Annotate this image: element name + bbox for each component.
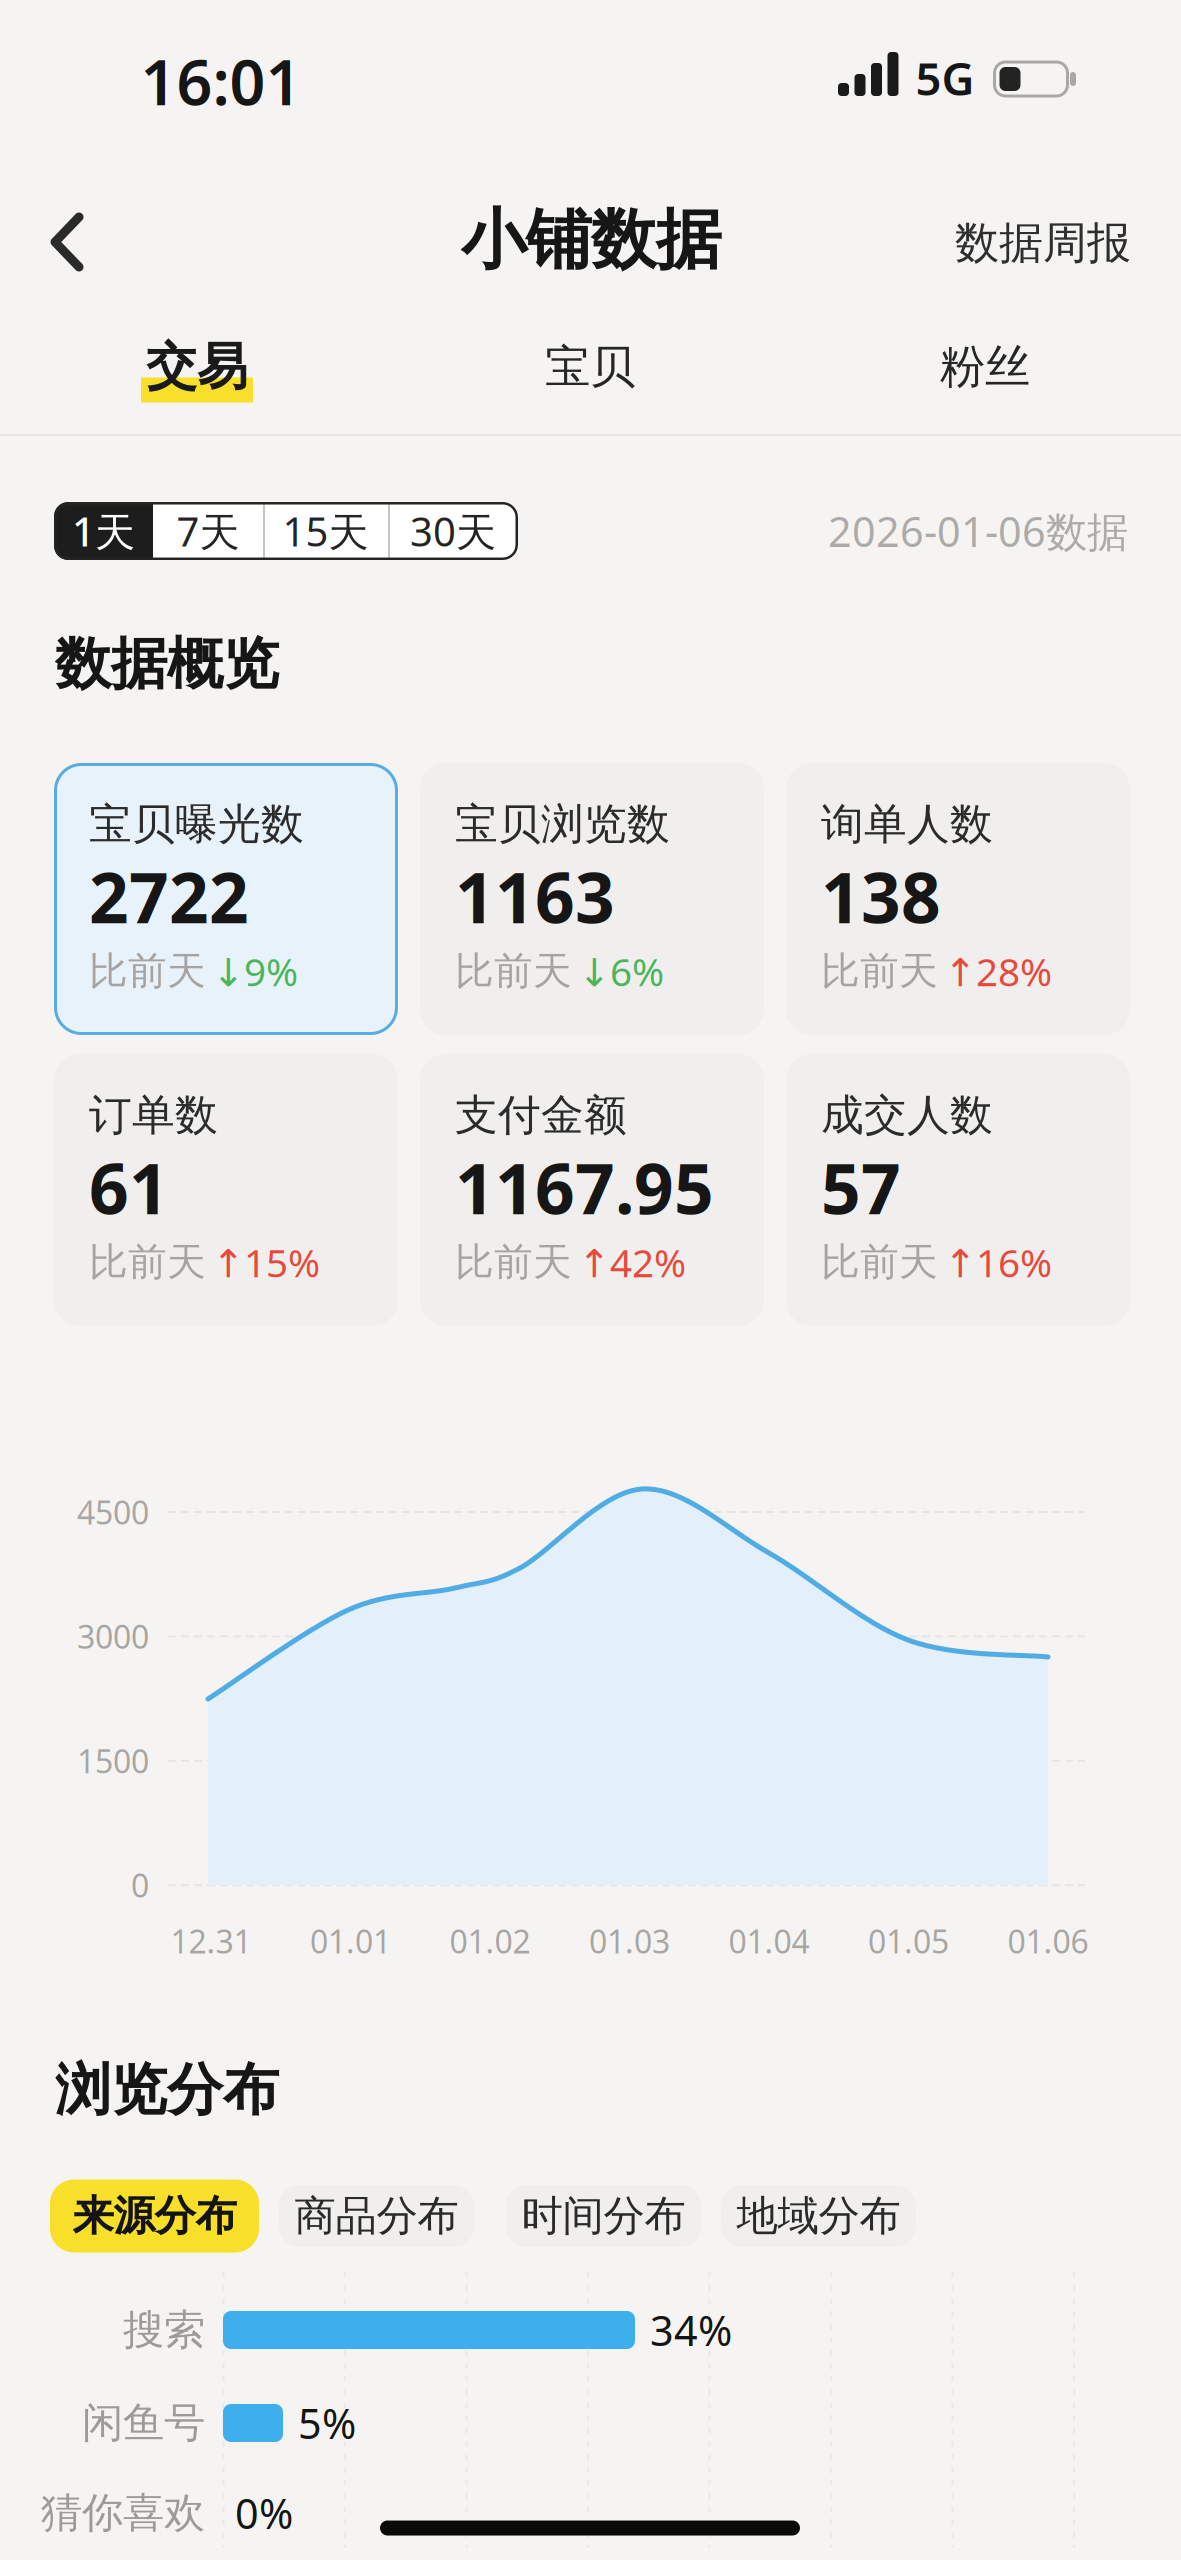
staticText: 搜索 (123, 2305, 205, 2355)
staticText: 15天 (282, 504, 368, 557)
staticText: 1163 (455, 850, 615, 942)
button[interactable]: 商品分布 (279, 2185, 474, 2247)
staticText: ↑42% (578, 1236, 686, 1288)
staticText: 成交人数 (821, 1089, 993, 1141)
staticText: 来源分布 (72, 2191, 236, 2241)
staticText: 7天 (176, 504, 239, 557)
staticText: 61 (89, 1141, 169, 1233)
button[interactable]: 7天 (153, 502, 263, 560)
staticText: 宝贝 (545, 339, 635, 395)
staticText: 数据概览 (55, 630, 279, 698)
staticText: 01.05 (868, 1920, 949, 1962)
staticText: 1500 (77, 1740, 149, 1782)
staticText: 5G (915, 48, 974, 108)
staticText: 小铺数据 (461, 200, 721, 280)
staticText: 地域分布 (736, 2191, 900, 2241)
staticText: 比前天 (89, 1238, 206, 1286)
staticText: 01.03 (589, 1920, 670, 1962)
button[interactable]: 1天 (54, 502, 153, 560)
button[interactable]: Back (51, 213, 83, 271)
button[interactable]: 询单人数 (786, 763, 1130, 1035)
staticText: 比前天 (821, 947, 938, 995)
staticText: ↓6% (578, 945, 664, 997)
staticText: 商品分布 (294, 2191, 458, 2241)
staticText: 4500 (77, 1491, 149, 1533)
button[interactable]: 30天 (388, 502, 518, 560)
staticText: 询单人数 (821, 798, 993, 850)
staticText: 时间分布 (521, 2191, 685, 2241)
button[interactable]: 地域分布 (721, 2185, 916, 2247)
staticText: 5% (298, 2396, 356, 2450)
staticText: 0% (235, 2486, 293, 2540)
staticText: 比前天 (455, 947, 572, 995)
button[interactable]: 15天 (263, 502, 388, 560)
staticText: 浏览分布 (55, 2056, 279, 2124)
button[interactable]: 成交人数 (786, 1054, 1130, 1326)
button[interactable]: 粉丝 (940, 339, 1030, 395)
staticText: 支付金额 (455, 1089, 627, 1141)
staticText: 01.02 (449, 1920, 530, 1962)
staticText: 2722 (89, 850, 249, 942)
button[interactable]: 宝贝 (545, 339, 635, 395)
staticText: 数据周报 (955, 216, 1131, 270)
staticText: 34% (650, 2303, 732, 2357)
button[interactable]: 时间分布 (506, 2185, 701, 2247)
staticText: ↑15% (212, 1236, 320, 1288)
button[interactable]: 来源分布 (50, 2179, 259, 2252)
staticText: 0 (131, 1864, 149, 1906)
staticText: 01.06 (1007, 1920, 1088, 1962)
staticText: 138 (821, 850, 941, 942)
staticText: 01.04 (728, 1920, 809, 1962)
staticText: 宝贝曝光数 (89, 798, 304, 850)
staticText: 订单数 (89, 1089, 218, 1141)
button[interactable]: 订单数 (54, 1054, 398, 1326)
staticText: 交易 (146, 336, 248, 398)
staticText: 2026-01-06数据 (828, 504, 1128, 558)
button[interactable]: 交易 (141, 336, 253, 398)
staticText: 01.01 (310, 1920, 391, 1962)
button[interactable]: 支付金额 (420, 1054, 764, 1326)
staticText: 16:01 (140, 39, 301, 123)
button[interactable]: 数据周报 (955, 216, 1131, 270)
staticText: 比前天 (455, 1238, 572, 1286)
staticText: 1167.95 (455, 1141, 714, 1233)
staticText: 比前天 (821, 1238, 938, 1286)
button[interactable]: 宝贝浏览数 (420, 763, 764, 1035)
staticText: 3000 (77, 1615, 149, 1658)
staticText: ↑16% (944, 1236, 1052, 1288)
staticText: 12.31 (170, 1920, 251, 1962)
staticText: 30天 (410, 504, 496, 557)
staticText: 1天 (72, 504, 135, 557)
staticText: 猜你喜欢 (41, 2488, 205, 2538)
staticText: ↓9% (212, 945, 298, 997)
staticText: 宝贝浏览数 (455, 798, 670, 850)
button[interactable]: 宝贝曝光数 (54, 763, 398, 1035)
staticText: 粉丝 (940, 339, 1030, 395)
staticText: 57 (821, 1141, 901, 1233)
staticText: 闲鱼号 (82, 2398, 205, 2448)
staticText: 比前天 (89, 947, 206, 995)
staticText: ↑28% (944, 945, 1052, 997)
